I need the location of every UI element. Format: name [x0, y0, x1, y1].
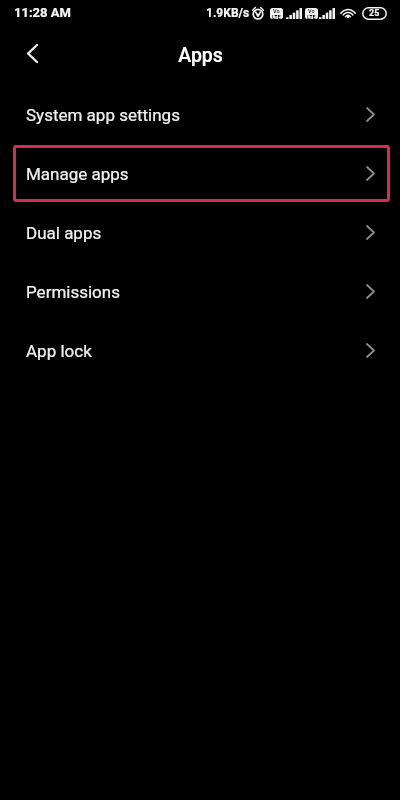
- staticText: Dual apps: [26, 223, 102, 243]
- staticText: LTE: [307, 14, 316, 19]
- staticText: Apps: [178, 44, 223, 67]
- button[interactable]: Dual apps: [0, 203, 400, 262]
- staticText: 1.9KB/s: [206, 6, 250, 20]
- staticText: App lock: [26, 341, 92, 361]
- staticText: Vo: [308, 8, 315, 14]
- staticText: Manage apps: [26, 164, 129, 184]
- button[interactable]: Permissions: [0, 262, 400, 321]
- staticText: Permissions: [26, 282, 120, 302]
- button[interactable]: Back: [12, 33, 52, 73]
- button[interactable]: Manage apps: [0, 144, 400, 203]
- button[interactable]: System app settings: [0, 85, 400, 144]
- staticText: System app settings: [26, 105, 180, 125]
- staticText: 11:28 AM: [14, 5, 71, 20]
- staticText: Vo: [273, 8, 280, 14]
- staticText: 25: [369, 8, 380, 19]
- button[interactable]: App lock: [0, 321, 400, 380]
- staticText: LTE: [272, 14, 281, 19]
